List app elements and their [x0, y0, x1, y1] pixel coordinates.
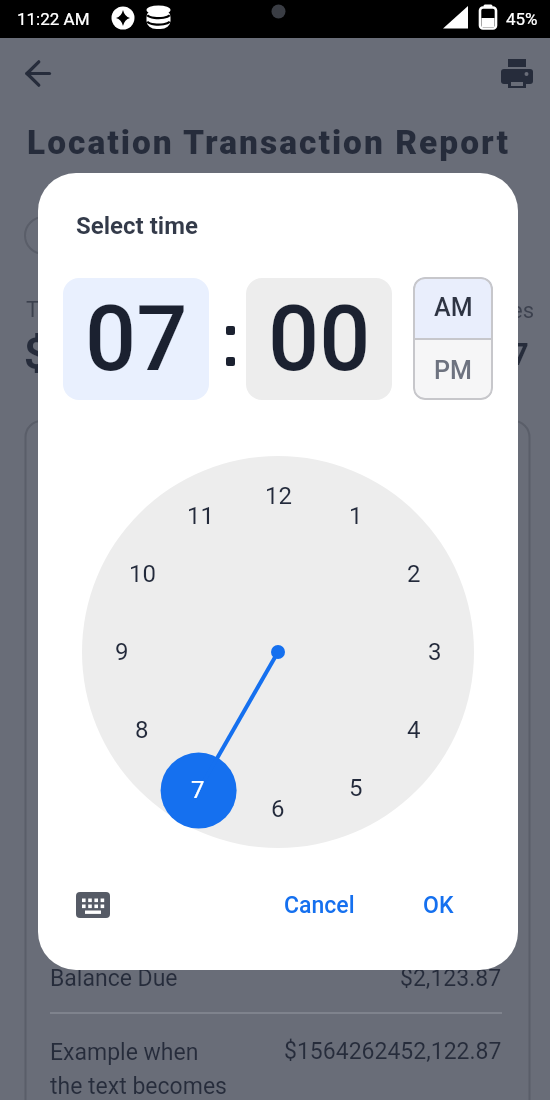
staticText: es [511, 298, 535, 324]
staticText: 11 [187, 502, 214, 530]
button[interactable] [17, 53, 61, 94]
staticText: AM [434, 293, 473, 322]
staticText: Cancel [284, 892, 355, 919]
staticText: PM [434, 356, 472, 385]
button[interactable] [72, 888, 114, 922]
staticText: 45% [506, 9, 538, 29]
staticText: Location Transaction Report [27, 123, 511, 162]
staticText: 7 [511, 336, 529, 372]
staticText: 07 [85, 287, 188, 392]
button[interactable]: Cancel [259, 885, 379, 926]
button[interactable]: OK [388, 885, 488, 926]
button[interactable]: 07 [63, 278, 209, 400]
staticText: 00 [268, 287, 371, 392]
staticText: 1 [349, 502, 363, 530]
staticText: 3 [428, 638, 442, 666]
staticText: $1564262452,122.87 [284, 1038, 502, 1065]
staticText: 6 [271, 795, 285, 823]
staticText: 2 [407, 560, 421, 588]
staticText: 7 [191, 776, 205, 804]
staticText: Select time [76, 212, 198, 240]
staticText: OK [423, 892, 454, 919]
staticText: 5 [349, 774, 363, 802]
staticText: Example when [50, 1039, 199, 1066]
staticText: 9 [115, 638, 129, 666]
staticText: 8 [135, 716, 149, 744]
staticText: T [26, 297, 40, 323]
staticText: $ [24, 330, 49, 379]
button[interactable]: 00 [246, 278, 392, 400]
staticText: 10 [129, 560, 156, 588]
staticText: 12 [265, 482, 292, 510]
staticText: 4 [407, 716, 421, 744]
staticText: $2,123.87 [400, 965, 502, 992]
button[interactable]: AM [413, 277, 493, 338]
button[interactable] [494, 53, 540, 94]
staticText: the text becomes [50, 1073, 227, 1100]
staticText: 11:22 AM [17, 9, 90, 29]
button[interactable]: PM [413, 340, 493, 400]
staticText: Balance Due [50, 965, 178, 992]
